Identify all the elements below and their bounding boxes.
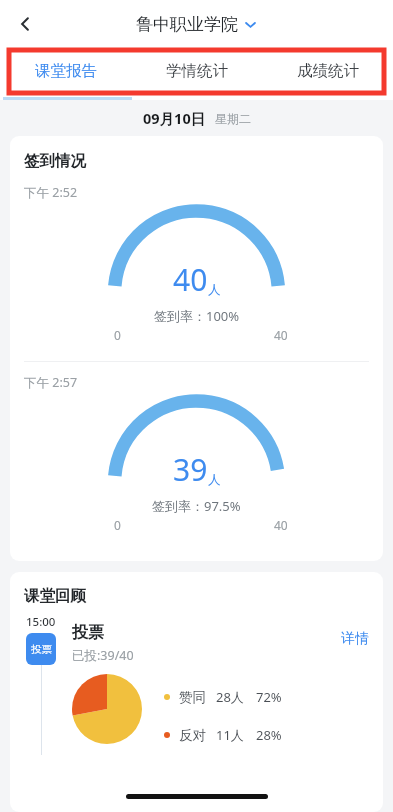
staticText: 鲁中职业学院 [136,14,238,35]
staticText: 0 [114,517,121,533]
staticText: 15:00 [26,614,56,630]
staticText: 09月10日 [143,108,206,128]
staticText: 人 [208,282,221,298]
staticText: 签到率：97.5% [152,497,241,515]
staticText: 28% [256,726,282,744]
staticText: 40 [274,327,288,343]
staticText: 签到情况 [24,151,86,171]
staticText: 11人 [216,726,244,744]
staticText: 投票 [31,643,52,656]
staticText: 课堂报告 [35,61,97,81]
staticText: 40 [173,259,208,300]
button[interactable]: 课堂报告 [0,48,131,100]
staticText: 星期二 [215,111,251,126]
staticText: 0 [114,327,121,343]
staticText: 39 [173,449,208,490]
staticText: 成绩统计 [297,61,359,81]
staticText: 已投:39/40 [72,647,134,664]
staticText: 人 [208,472,221,488]
button[interactable]: 投票 [26,633,56,665]
staticText: 反对 [179,727,206,744]
staticText: 签到率：100% [154,307,240,325]
button[interactable]: 详情 [341,630,369,648]
button[interactable]: 鲁中职业学院 [136,14,257,35]
staticText: 下午 2:52 [24,184,78,201]
staticText: 40 [274,517,288,533]
staticText: 下午 2:57 [24,374,78,391]
staticText: 28人 [216,688,244,706]
button[interactable]: Back [4,3,46,45]
button[interactable]: 成绩统计 [262,48,393,100]
staticText: 投票 [72,623,104,643]
staticText: 赞同 [179,689,206,706]
staticText: 学情统计 [166,61,228,81]
staticText: 72% [256,688,282,706]
staticText: 课堂回顾 [24,586,86,606]
button[interactable]: 学情统计 [131,48,262,100]
staticText: 详情 [341,630,369,648]
